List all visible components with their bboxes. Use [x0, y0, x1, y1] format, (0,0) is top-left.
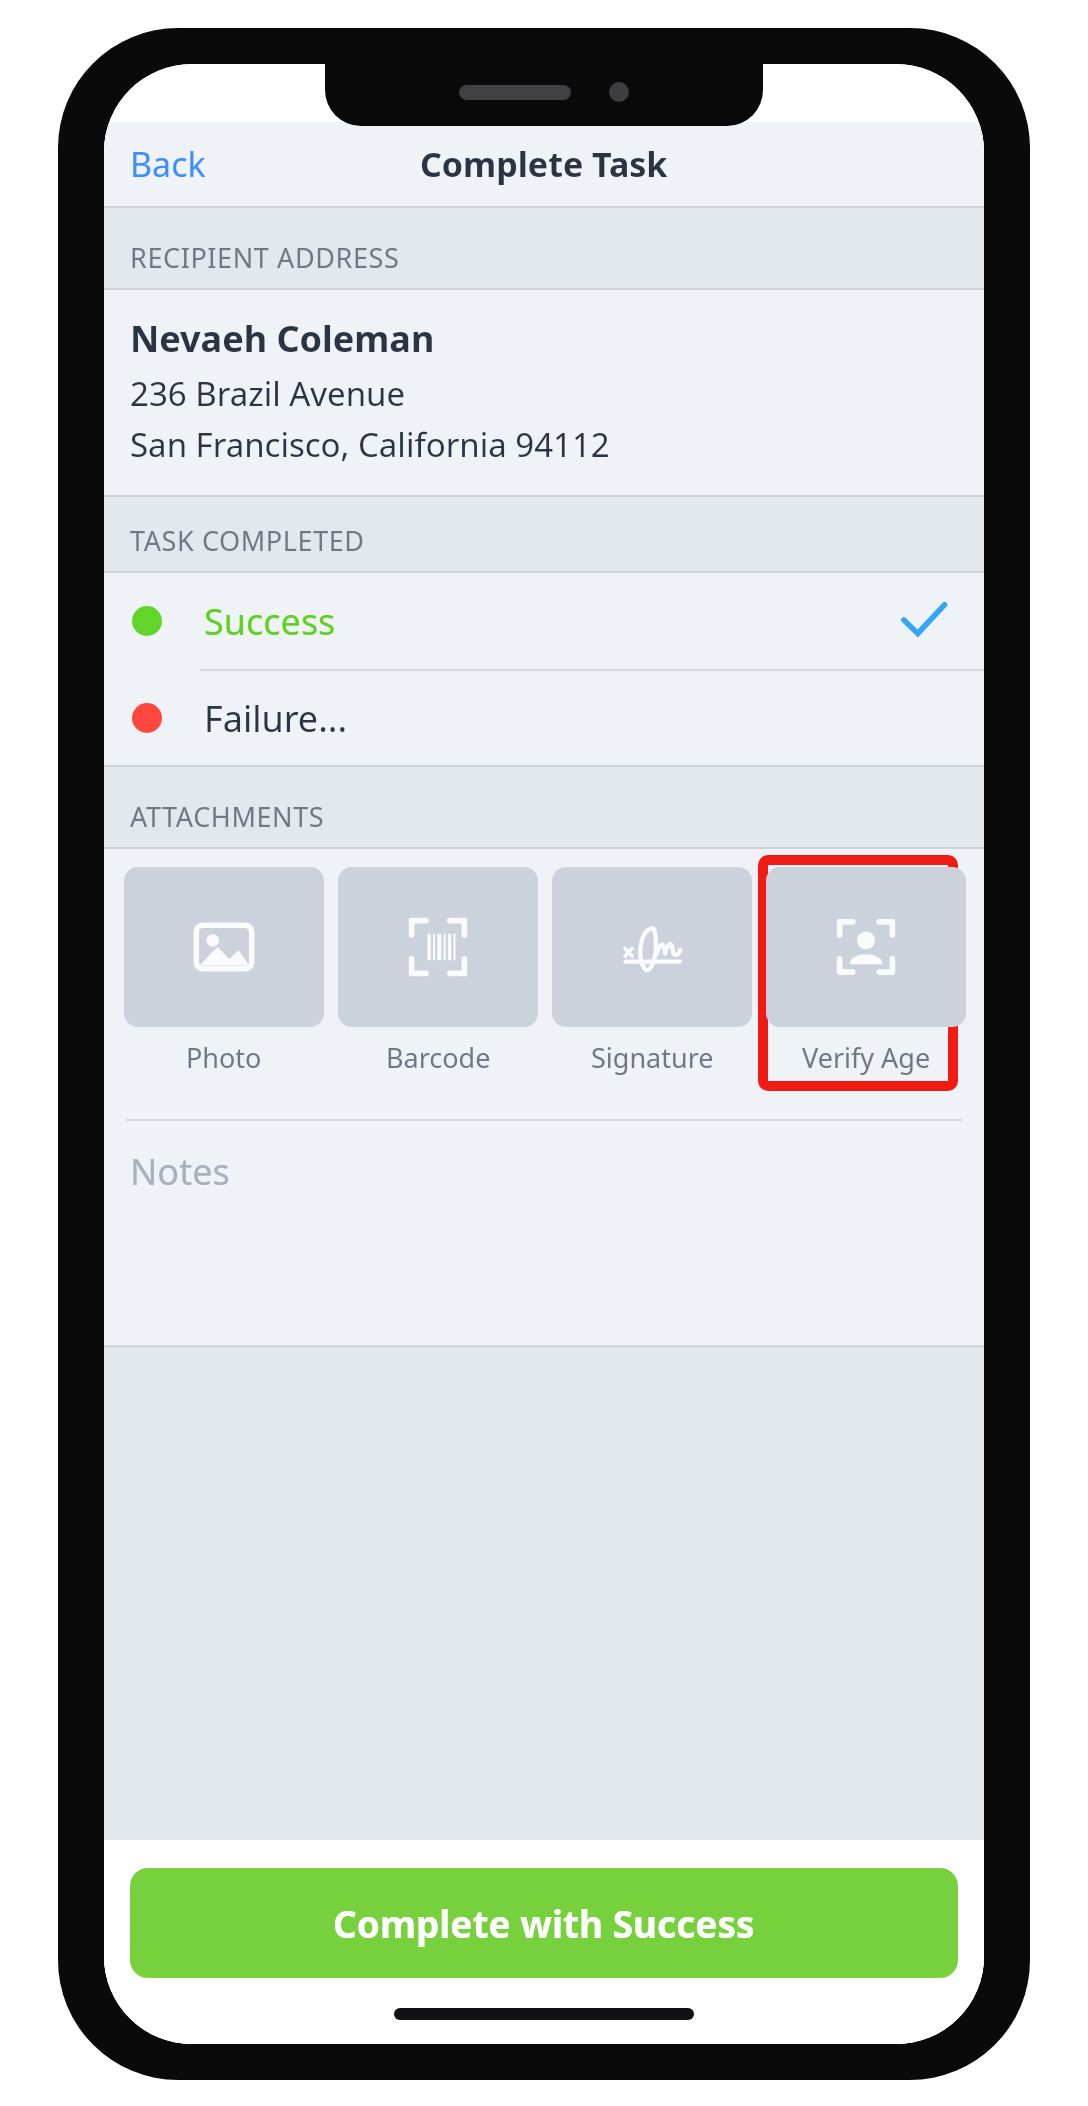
- staticText: Photo: [186, 1039, 262, 1076]
- button[interactable]: Complete with Success: [130, 1868, 958, 1978]
- button[interactable]: Success: [104, 573, 984, 669]
- staticText: San Francisco, California 94112: [130, 422, 610, 467]
- button[interactable]: Verify Age: [766, 867, 966, 1076]
- button[interactable]: Notes: [104, 1121, 984, 1345]
- staticText: Barcode: [386, 1039, 491, 1076]
- button[interactable]: Signature: [552, 867, 752, 1076]
- staticText: Complete with Success: [333, 1898, 755, 1948]
- staticText: RECIPIENT ADDRESS: [130, 239, 400, 276]
- staticText: Back: [130, 141, 206, 187]
- staticText: Nevaeh Coleman: [130, 314, 435, 363]
- staticText: ATTACHMENTS: [130, 798, 325, 835]
- staticText: TASK COMPLETED: [130, 522, 365, 559]
- button[interactable]: Back: [104, 127, 232, 201]
- button[interactable]: Failure...: [104, 671, 984, 765]
- staticText: Complete Task: [420, 141, 668, 187]
- staticText: Notes: [130, 1147, 230, 1196]
- staticText: 236 Brazil Avenue: [130, 371, 406, 416]
- staticText: Verify Age: [802, 1039, 931, 1076]
- staticText: Signature: [591, 1039, 714, 1076]
- staticText: Success: [204, 597, 336, 646]
- button[interactable]: Barcode: [338, 867, 538, 1076]
- staticText: Failure...: [204, 694, 348, 743]
- button[interactable]: Photo: [124, 867, 324, 1076]
